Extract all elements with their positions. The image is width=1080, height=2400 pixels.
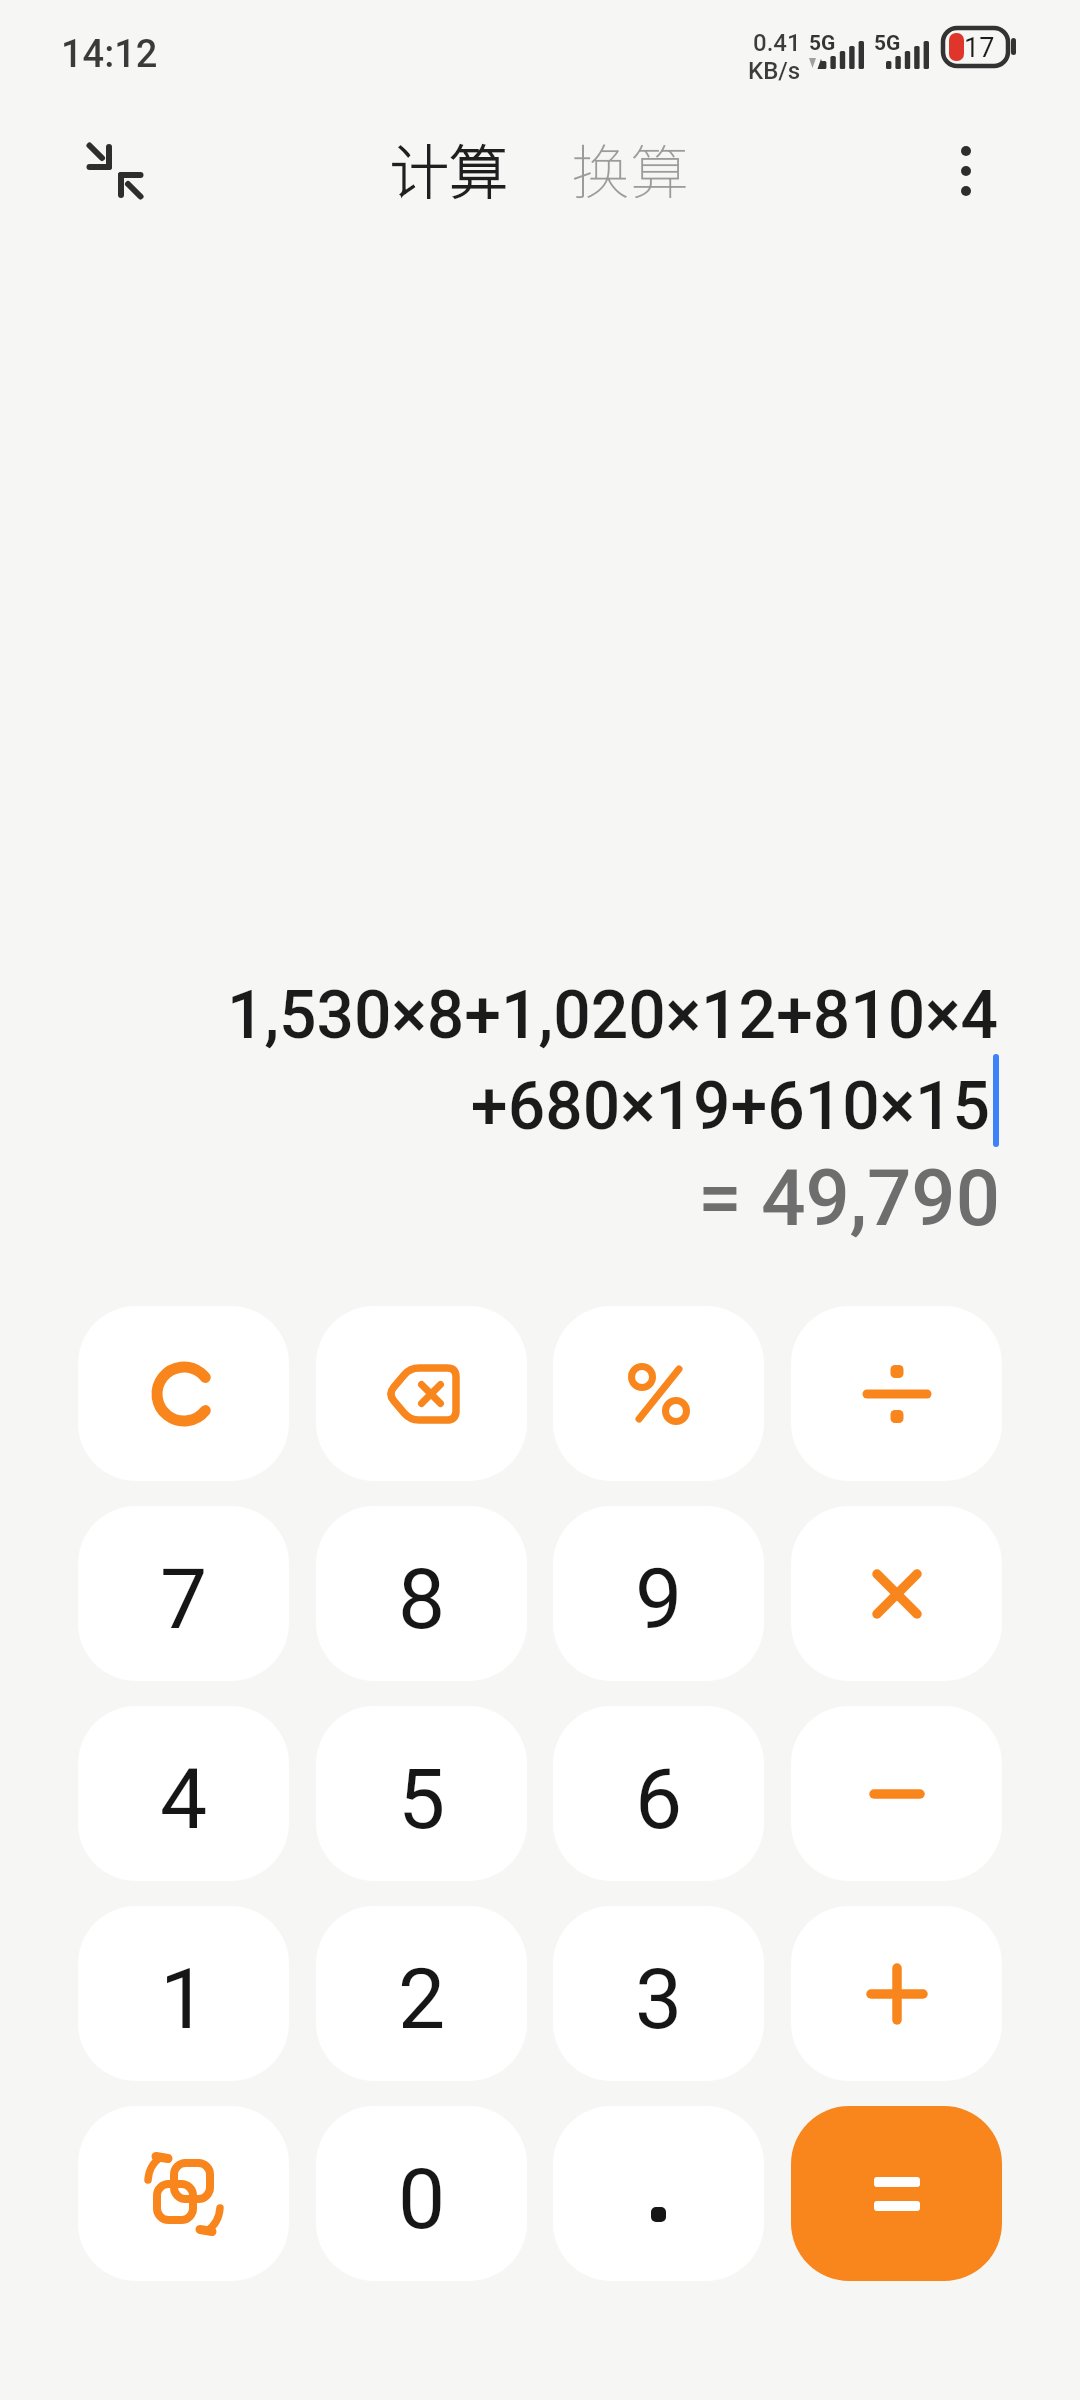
staticText: 0.41 (753, 29, 801, 57)
button[interactable] (553, 1306, 764, 1481)
button[interactable]: 8 (316, 1506, 527, 1681)
staticText: +680×19+610×15 (470, 1068, 990, 1145)
staticText: 6 (635, 1750, 683, 1848)
button[interactable]: 计算 (390, 126, 509, 211)
button[interactable] (78, 1306, 289, 1481)
button[interactable] (791, 1506, 1002, 1681)
staticText: 5G (874, 31, 901, 56)
button[interactable]: 9 (553, 1506, 764, 1681)
button[interactable]: 3 (553, 1906, 764, 2081)
staticText: 1 (160, 1950, 208, 2048)
staticText: 5 (398, 1750, 446, 1848)
button[interactable]: 1 (78, 1906, 289, 2081)
button[interactable] (936, 131, 996, 211)
staticText: 5G (809, 31, 836, 56)
staticText: 8 (398, 1550, 446, 1648)
button[interactable] (791, 1906, 1002, 2081)
staticText: 14:12 (61, 32, 158, 77)
staticText: 17 (964, 32, 995, 64)
staticText: 9 (635, 1550, 683, 1648)
button[interactable] (791, 1706, 1002, 1881)
staticText: 2 (398, 1950, 446, 2048)
staticText: 1,530×8+1,020×12+810×4 (226, 977, 998, 1054)
button[interactable]: 2 (316, 1906, 527, 2081)
staticText: 4 (160, 1750, 208, 1848)
staticText: 换算 (571, 126, 690, 211)
button[interactable]: 7 (78, 1506, 289, 1681)
button[interactable] (791, 1306, 1002, 1481)
button[interactable] (791, 2106, 1002, 2281)
button[interactable]: 5 (316, 1706, 527, 1881)
button[interactable]: 0 (316, 2106, 527, 2281)
button[interactable] (69, 125, 161, 217)
button[interactable] (553, 2106, 764, 2281)
button[interactable] (78, 2106, 289, 2281)
button[interactable]: 6 (553, 1706, 764, 1881)
staticText: 7 (160, 1550, 208, 1648)
staticText: 3 (635, 1950, 683, 2048)
staticText: 0 (398, 2150, 446, 2248)
button[interactable] (316, 1306, 527, 1481)
staticText: KB/s (748, 57, 801, 85)
staticText: = 49,790 (698, 1153, 1000, 1244)
button[interactable]: 4 (78, 1706, 289, 1881)
button[interactable]: 换算 (571, 126, 690, 211)
staticText: 计算 (390, 126, 509, 211)
